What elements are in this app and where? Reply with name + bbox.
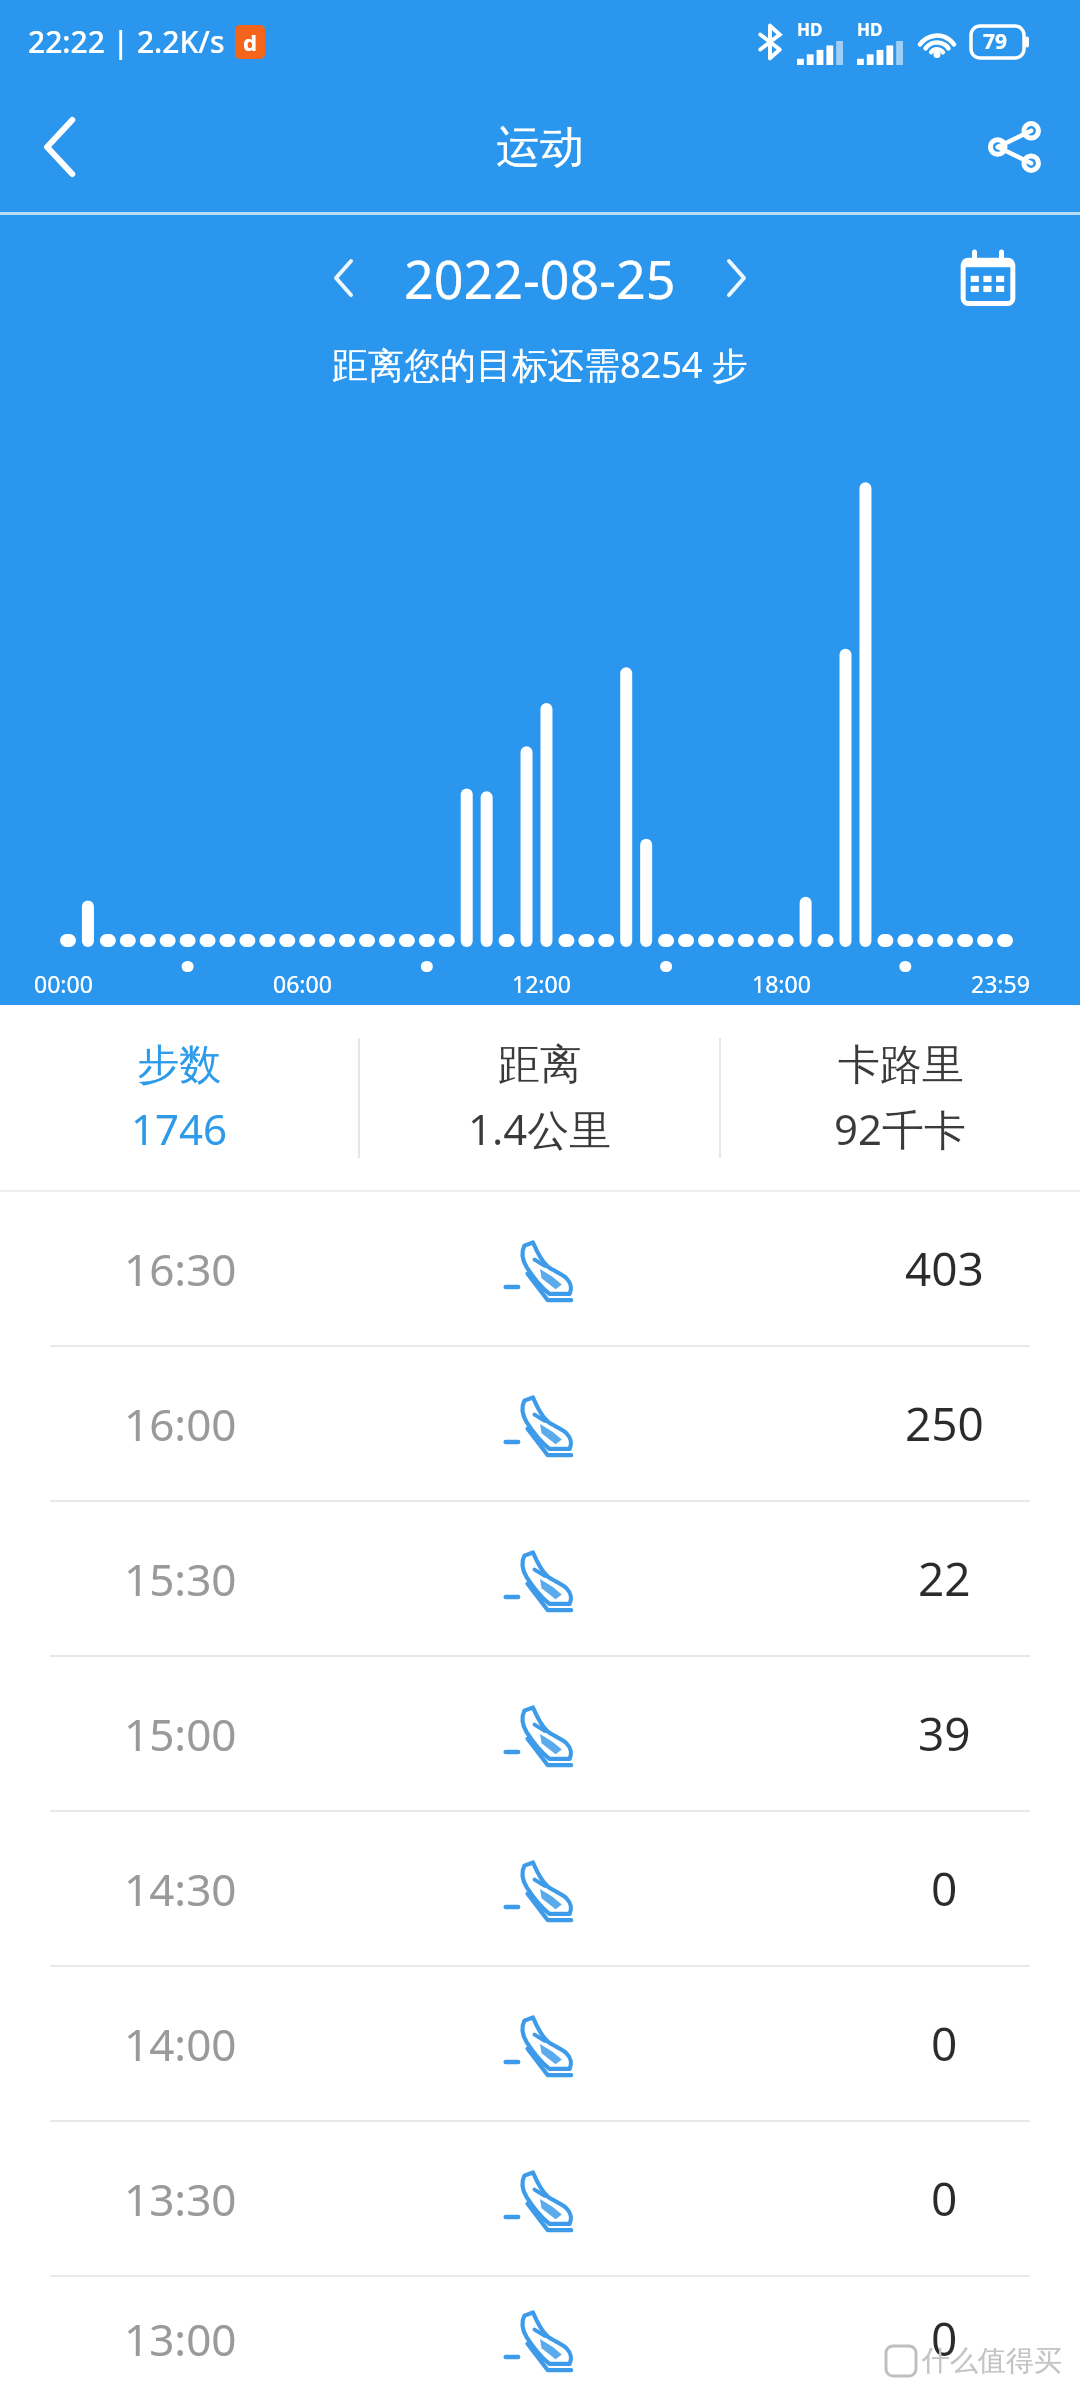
button[interactable]: 14:30 xyxy=(0,1812,1080,1965)
staticText: 0 xyxy=(931,2167,958,2230)
staticText: 39 xyxy=(918,1702,971,1765)
button[interactable]: Next day xyxy=(700,233,772,323)
staticText: 2022-08-25 xyxy=(404,243,676,314)
button[interactable]: 14:00 xyxy=(0,1967,1080,2120)
button[interactable]: 15:00 xyxy=(0,1657,1080,1810)
staticText: 79 xyxy=(983,27,1008,56)
button[interactable]: 步数 xyxy=(0,1039,358,1157)
staticText: 12:00 xyxy=(512,968,571,999)
staticText: 步数 xyxy=(137,1039,221,1092)
button[interactable]: Pick date xyxy=(948,233,1028,323)
staticText: 00:00 xyxy=(34,968,93,999)
button[interactable]: 15:30 xyxy=(0,1502,1080,1655)
staticText: 23:59 xyxy=(971,968,1030,999)
staticText: 什么值得买 xyxy=(922,2343,1062,2378)
staticText: 距离 xyxy=(498,1039,582,1092)
staticText: 14:30 xyxy=(124,1859,237,1919)
staticText: 0 xyxy=(931,1857,958,1920)
staticText: 15:30 xyxy=(124,1549,237,1609)
staticText: 1746 xyxy=(131,1100,228,1157)
staticText: 22:22 | 2.2K/s xyxy=(28,21,225,62)
button[interactable]: 13:00 xyxy=(0,2277,1080,2400)
staticText: 距离您的目标还需8254 步 xyxy=(332,340,748,389)
staticText: 运动 xyxy=(496,120,584,175)
staticText: 14:00 xyxy=(124,2014,237,2074)
staticText: 卡路里 xyxy=(838,1039,964,1092)
button[interactable]: 16:00 xyxy=(0,1347,1080,1500)
staticText: 0 xyxy=(931,2307,958,2370)
staticText: 13:00 xyxy=(124,2309,237,2369)
staticText: 92千卡 xyxy=(834,1100,967,1157)
staticText: 16:30 xyxy=(124,1239,237,1299)
staticText: 1.4公里 xyxy=(468,1100,612,1157)
staticText: HD xyxy=(857,18,883,41)
staticText: 403 xyxy=(905,1237,984,1300)
button[interactable]: Previous day xyxy=(308,233,380,323)
button[interactable]: 卡路里 xyxy=(721,1039,1080,1157)
staticText: 22 xyxy=(918,1547,971,1610)
staticText: d xyxy=(243,27,257,57)
staticText: 18:00 xyxy=(752,968,811,999)
button[interactable]: 距离 xyxy=(360,1039,719,1157)
staticText: 250 xyxy=(905,1392,984,1455)
staticText: 15:00 xyxy=(124,1704,237,1764)
staticText: 16:00 xyxy=(124,1394,237,1454)
staticText: 06:00 xyxy=(273,968,332,999)
button[interactable]: 16:30 xyxy=(0,1192,1080,1345)
staticText: 13:30 xyxy=(124,2169,237,2229)
staticText: HD xyxy=(797,18,823,41)
button[interactable]: Back xyxy=(0,82,120,212)
button[interactable]: Share xyxy=(950,82,1080,212)
staticText: 0 xyxy=(931,2012,958,2075)
button[interactable]: 13:30 xyxy=(0,2122,1080,2275)
